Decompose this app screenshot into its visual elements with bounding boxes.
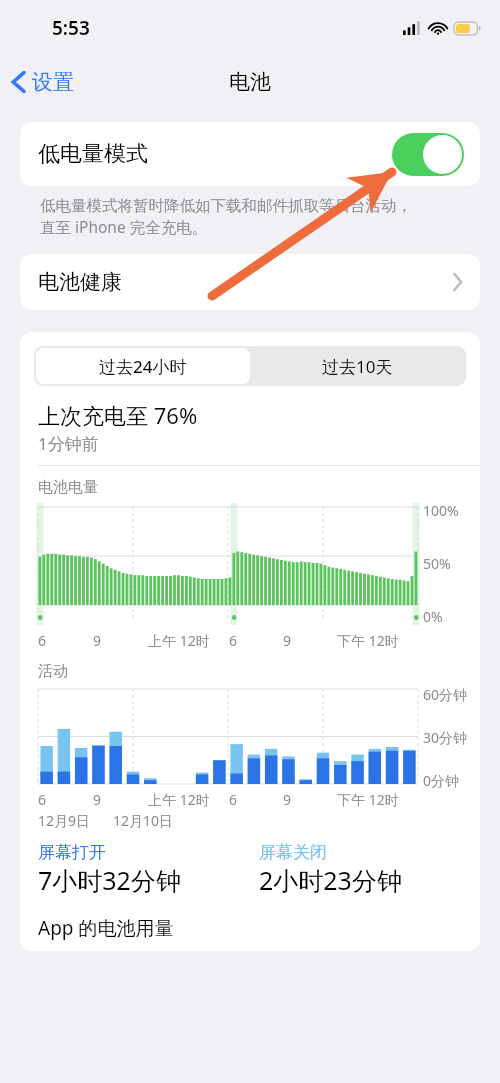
button[interactable]: 电池健康 [20, 254, 480, 310]
staticText: 低电量模式 [38, 140, 148, 168]
staticText: 活动 [38, 662, 68, 681]
staticText: 6 [38, 631, 47, 650]
staticText: 过去24小时 [99, 355, 187, 378]
staticText: 过去10天 [322, 355, 393, 378]
staticText: 0% [423, 607, 443, 626]
staticText: 30分钟 [423, 728, 468, 747]
button[interactable]: 过去24小时 [36, 348, 250, 384]
staticText: App 的电池用量 [38, 915, 174, 941]
staticText: 电池健康 [38, 269, 122, 295]
staticText: 50% [423, 554, 451, 573]
staticText: 5:53 [52, 15, 90, 41]
staticText: 下午 12时 [337, 790, 399, 809]
staticText: 屏幕关闭 [259, 842, 327, 863]
staticText: 6 [38, 790, 47, 809]
staticText: 9 [93, 790, 102, 809]
staticText: 60分钟 [423, 685, 468, 704]
button[interactable]: 设置 [0, 63, 86, 101]
staticText: 6 [229, 631, 238, 650]
staticText: 12月10日 [113, 811, 174, 830]
staticText: 12月9日 [38, 811, 91, 830]
staticText: 0分钟 [423, 771, 460, 790]
staticText: 电池电量 [38, 478, 98, 497]
staticText: 9 [93, 631, 102, 650]
button[interactable]: 过去10天 [250, 348, 464, 384]
staticText: 电池 [229, 69, 271, 95]
staticText: 100% [423, 501, 459, 520]
staticText: 下午 12时 [337, 631, 399, 650]
button[interactable]: 低电量模式开关 [392, 133, 464, 176]
staticText: 上午 12时 [148, 790, 210, 809]
button[interactable]: 低电量模式 [20, 122, 480, 186]
staticText: 上午 12时 [148, 631, 210, 650]
staticText: 设置 [32, 69, 74, 95]
staticText: 9 [283, 790, 292, 809]
staticText: 9 [283, 631, 292, 650]
staticText: 7小时32分钟 [38, 863, 181, 897]
staticText: 2小时23分钟 [259, 863, 402, 897]
staticText: 6 [229, 790, 238, 809]
staticText: 1分钟前 [38, 432, 99, 455]
staticText: 上次充电至 76% [38, 400, 198, 430]
staticText: 低电量模式将暂时降低如下载和邮件抓取等后台活动， 直至 iPhone 完全充电。 [40, 196, 460, 238]
staticText: 屏幕打开 [38, 842, 106, 863]
